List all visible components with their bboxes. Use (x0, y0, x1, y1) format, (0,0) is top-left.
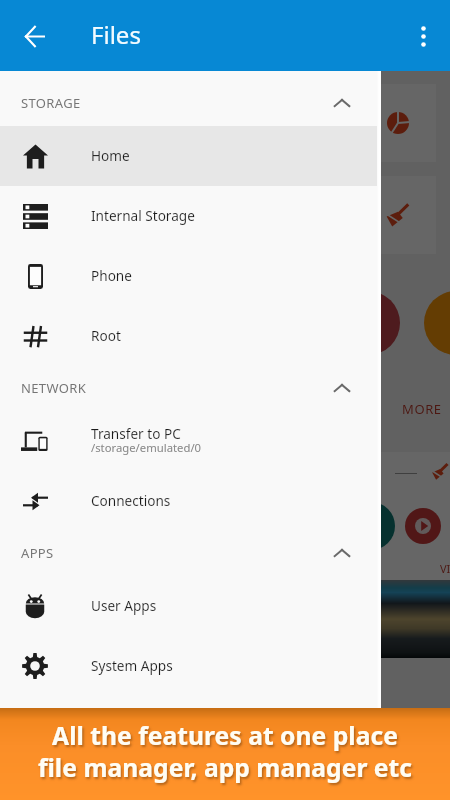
staticText: Home (91, 146, 130, 165)
button[interactable]: Phone (0, 246, 381, 306)
staticText: User Apps (91, 596, 157, 615)
staticText: Files (91, 18, 141, 51)
button[interactable]: STORAGE (0, 71, 381, 126)
staticText: All the features at one place file manag… (0, 719, 450, 784)
button[interactable]: APPS (0, 531, 381, 576)
staticText: /storage/emulated/0 (91, 440, 202, 455)
staticText: Internal Storage (91, 206, 195, 225)
staticText: Connections (91, 491, 171, 510)
other: Collapse NETWORK (334, 380, 350, 396)
staticText: Phone (91, 266, 132, 285)
button[interactable]: NETWORK (0, 366, 381, 411)
button[interactable]: User Apps (0, 576, 381, 636)
staticText: APPS (21, 544, 54, 562)
other: Collapse STORAGE (334, 95, 350, 111)
button[interactable]: All the features at one place file manag… (0, 708, 450, 800)
staticText: System Apps (91, 656, 173, 675)
button[interactable]: More options (401, 14, 445, 58)
button[interactable]: Transfer to PC (0, 411, 381, 471)
staticText: STORAGE (21, 94, 81, 112)
button[interactable]: Root (0, 306, 381, 366)
staticText: Root (91, 326, 121, 345)
button[interactable]: System Apps (0, 636, 381, 696)
staticText: NETWORK (21, 379, 87, 397)
staticText: VIDEOS (440, 561, 450, 576)
button[interactable]: Connections (0, 471, 381, 531)
staticText: MORE (402, 400, 442, 418)
button[interactable]: Home (0, 126, 381, 186)
other: Collapse APPS (334, 545, 350, 561)
staticText: Transfer to PC (91, 424, 181, 443)
button[interactable]: Internal Storage (0, 186, 381, 246)
button[interactable]: Back (12, 14, 56, 58)
